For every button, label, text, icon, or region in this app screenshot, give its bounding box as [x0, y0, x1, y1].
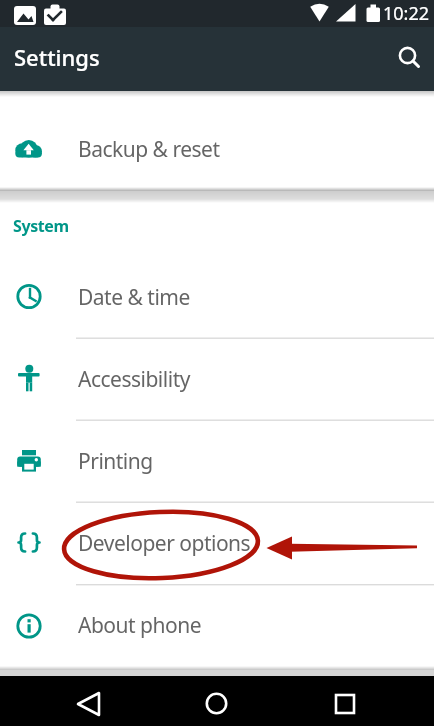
staticText: Developer options: [78, 529, 251, 558]
staticText: Printing: [78, 447, 153, 476]
staticText: About phone: [78, 611, 201, 640]
button[interactable]: [193, 680, 241, 726]
staticText: Settings: [14, 42, 100, 72]
staticText: 10:22: [383, 1, 430, 26]
staticText: Date & time: [78, 283, 190, 312]
button[interactable]: [65, 680, 113, 726]
button[interactable]: Developer options: [0, 502, 434, 584]
staticText: System: [13, 215, 69, 237]
button[interactable]: [321, 680, 369, 726]
button[interactable]: Date & time: [0, 256, 434, 338]
staticText: Accessibility: [78, 365, 190, 394]
button[interactable]: [386, 35, 434, 83]
button[interactable]: Printing: [0, 420, 434, 502]
button[interactable]: Backup & reset: [0, 108, 434, 190]
button[interactable]: Accessibility: [0, 338, 434, 420]
button[interactable]: About phone: [0, 584, 434, 666]
staticText: Backup & reset: [78, 135, 220, 164]
